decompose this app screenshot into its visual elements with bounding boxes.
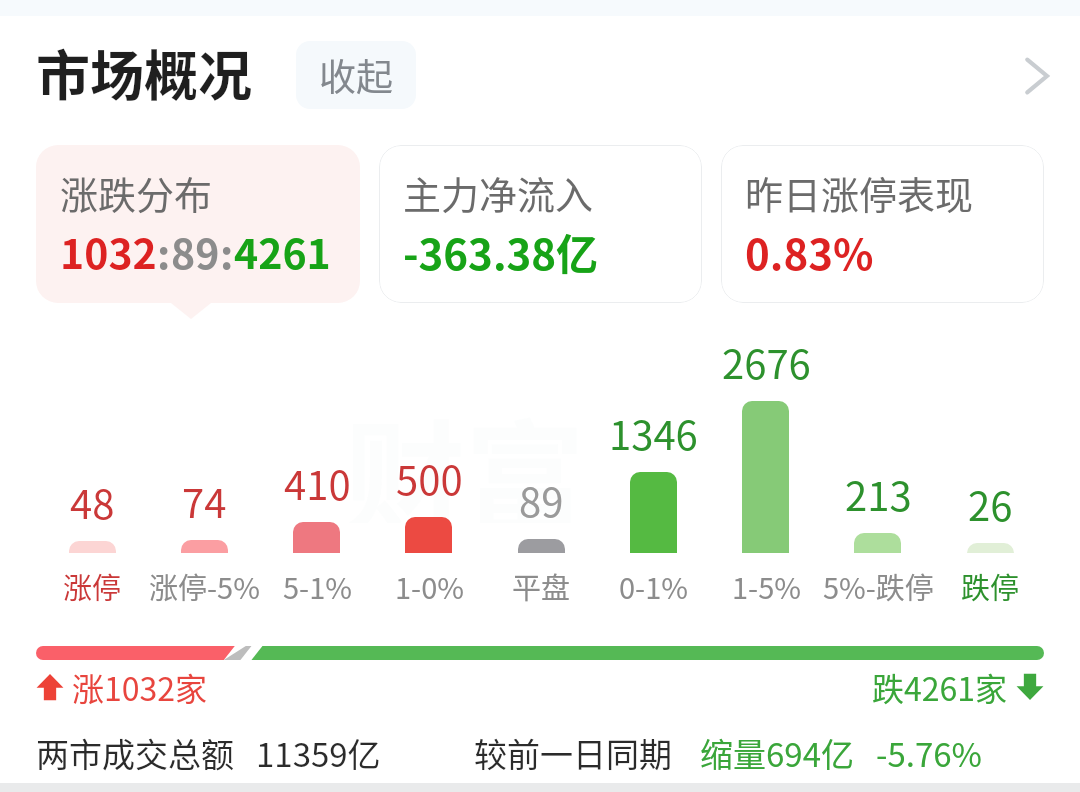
staticText: 市场概况 <box>36 33 252 111</box>
staticText: 0-1% <box>619 565 688 607</box>
button[interactable]: 昨日涨停表现 <box>721 145 1044 303</box>
staticText: 涨1032家 <box>72 664 208 710</box>
staticText: -363.38亿 <box>403 221 599 282</box>
staticText: 1032 <box>60 221 157 280</box>
staticText: 5%-跌停 <box>823 565 934 607</box>
staticText: 主力净流入 <box>403 165 594 220</box>
staticText: 1-0% <box>395 565 464 607</box>
staticText: 较前一日同期 <box>474 729 672 777</box>
staticText: 1-5% <box>732 565 801 607</box>
button[interactable]: 0-1% 1346 <box>597 340 709 600</box>
staticText: : <box>157 221 171 280</box>
button[interactable]: 涨跌分布 <box>36 145 360 303</box>
staticText: 11359亿 <box>256 729 381 777</box>
staticText: 5-1% <box>283 565 352 607</box>
button[interactable]: 收起 <box>296 41 416 109</box>
staticText: 1346 <box>609 404 698 462</box>
button[interactable]: 主力净流入 <box>379 145 702 303</box>
button[interactable]: 1-0% 500 <box>373 340 485 600</box>
staticText: 昨日涨停表现 <box>745 165 974 220</box>
staticText: 涨停-5% <box>149 565 260 607</box>
staticText: 平盘 <box>512 565 571 607</box>
staticText: 26 <box>968 475 1013 533</box>
staticText: 缩量694亿 <box>700 729 854 777</box>
staticText: 89 <box>519 471 564 529</box>
staticText: -5.76% <box>876 729 982 777</box>
staticText: 410 <box>284 454 351 512</box>
staticText: : <box>220 221 234 280</box>
staticText: 4261 <box>234 221 331 280</box>
button[interactable]: 5%-跌停 213 <box>822 340 934 600</box>
staticText: 89 <box>171 221 220 280</box>
button[interactable]: 平盘 89 <box>485 340 597 600</box>
staticText: 74 <box>182 472 227 530</box>
button[interactable]: 涨停 48 <box>36 340 148 600</box>
staticText: 跌4261家 <box>872 664 1008 710</box>
staticText: 2676 <box>722 333 811 391</box>
staticText: 涨跌分布 <box>60 165 213 220</box>
staticText: 500 <box>396 449 463 507</box>
button[interactable]: 展开更多 <box>1002 44 1066 108</box>
staticText: 0.83% <box>745 221 874 282</box>
staticText: 两市成交总额 <box>36 729 234 777</box>
staticText: 213 <box>845 465 912 523</box>
staticText: 48 <box>70 473 115 531</box>
button[interactable]: 跌停 26 <box>934 340 1046 600</box>
staticText: 涨停 <box>63 565 122 607</box>
button[interactable]: 5-1% 410 <box>261 340 373 600</box>
staticText: 收起 <box>319 48 393 102</box>
button[interactable]: 1-5% 2676 <box>710 340 822 600</box>
staticText: 跌停 <box>961 565 1020 607</box>
button[interactable]: 涨停-5% 74 <box>148 340 260 600</box>
staticText: 财富 <box>345 383 585 523</box>
